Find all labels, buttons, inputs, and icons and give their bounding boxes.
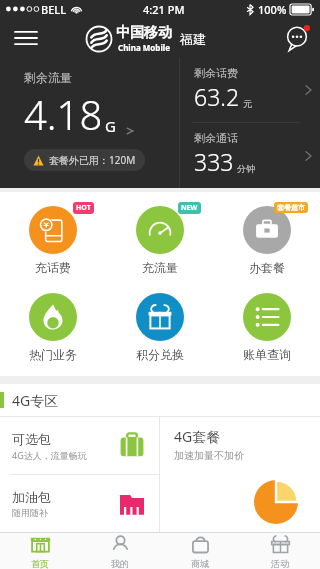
staticText: 100% [258,2,287,17]
staticText: HOT [76,203,91,213]
button[interactable]: 剩余通话 [180,123,320,188]
staticText: 4G专区 [12,391,59,410]
button[interactable]: 4G套餐 [160,417,320,532]
staticText: 热门业务 [29,347,77,362]
button[interactable]: NEW [106,202,213,279]
staticText: 积分兑换 [136,347,184,362]
staticText: 套餐外已用：120M [49,153,136,167]
button[interactable]: 中国移动 [86,24,206,53]
staticText: 63.2 [194,81,240,112]
staticText: 333 [194,146,234,177]
staticText: 分钟 [237,163,255,174]
staticText: 首页 [31,558,49,569]
button[interactable]: 套餐外已用：120M [33,153,136,167]
button[interactable]: 加油包 [0,475,159,532]
staticText: 4G套餐 [174,427,221,446]
button[interactable]: 商城 [160,533,240,569]
staticText: 4:21 PM [143,2,185,17]
staticText: 充流量 [142,260,178,275]
button[interactable]: 账单查询 [213,289,320,366]
staticText: 随用随补 [12,507,48,518]
staticText: 福建 [180,31,206,47]
button[interactable]: 首页 [0,533,80,569]
button[interactable]: 热门业务 [0,289,106,366]
staticText: BELL [41,2,67,17]
button[interactable]: 积分兑换 [106,289,213,366]
staticText: 活动 [271,558,289,569]
staticText: 剩余流量 [24,70,72,85]
button[interactable]: Menu [8,21,44,55]
staticText: 剩余话费 [194,66,238,80]
staticText: 中国移动 [116,24,172,42]
staticText: 套餐超市 [277,203,305,212]
button[interactable]: 可选包 [0,417,159,474]
staticText: 充话费 [35,260,71,275]
staticText: NEW [181,203,198,213]
staticText: 可选包 [12,431,51,447]
button[interactable]: 剩余话费 [180,58,320,122]
button[interactable]: 活动 [240,533,320,569]
staticText: 加速加量不加价 [174,449,244,462]
staticText: China Mobile [118,42,170,53]
button[interactable]: HOT [0,202,106,279]
staticText: 账单查询 [243,347,291,362]
staticText: 商城 [191,558,209,569]
staticText: 元 [243,98,252,109]
button[interactable]: 我的 [80,533,160,569]
button[interactable]: Messages [280,21,314,55]
staticText: 办套餐 [249,260,285,275]
staticText: 4.18 [24,87,103,141]
button[interactable]: 套餐超市 [213,202,320,279]
staticText: 加油包 [12,489,51,505]
staticText: 4G达人，流量畅玩 [12,449,87,461]
button[interactable]: 剩余流量 [0,58,179,188]
staticText: G [105,116,116,136]
staticText: 我的 [111,558,129,569]
staticText: 剩余通话 [194,131,238,145]
